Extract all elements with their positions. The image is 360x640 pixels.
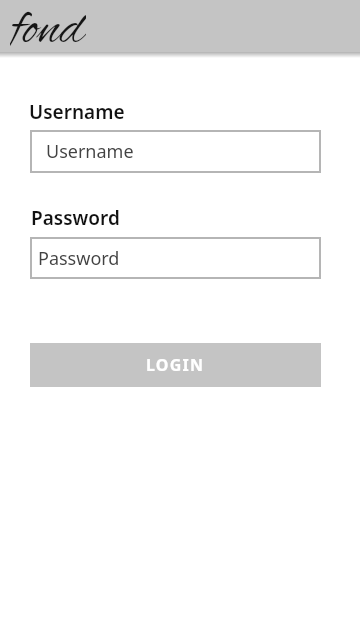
staticText: Username <box>46 139 134 164</box>
button[interactable]: LOGIN <box>30 343 321 387</box>
staticText: Username <box>29 99 125 125</box>
staticText: fond <box>10 0 86 49</box>
button[interactable]: Password <box>30 237 321 279</box>
staticText: Password <box>38 246 120 271</box>
button[interactable]: Username <box>30 130 321 173</box>
staticText: Password <box>31 205 120 231</box>
staticText: LOGIN <box>146 354 205 376</box>
